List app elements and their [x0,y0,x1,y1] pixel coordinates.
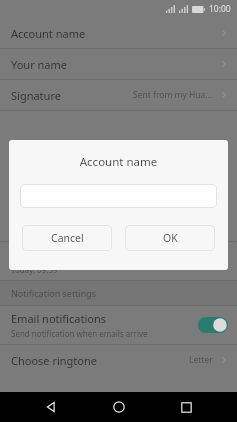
button[interactable]: Recent apps [169,392,203,422]
staticText: Account name [11,26,86,41]
staticText: Signature [11,88,61,103]
button[interactable]: Email notifications [0,306,237,344]
staticText: Account name [9,154,228,170]
staticText: Choose ringtone [11,353,97,368]
staticText: Cancel [51,231,84,245]
button[interactable]: Account name [0,18,237,48]
staticText: 10:00 [209,3,231,15]
staticText: Send notification when emails arrive [11,328,148,339]
staticText: Today, 09:59 [11,264,58,275]
staticText: Your name [11,57,67,72]
button[interactable]: Back [34,392,68,422]
staticText: Sync Email [11,247,66,262]
button[interactable]: Sync Email [0,242,237,280]
button[interactable]: Account name input field [20,184,217,208]
button[interactable]: Cancel [22,225,112,251]
button[interactable]: Signature [0,80,237,110]
button[interactable]: Home [102,392,136,422]
button[interactable]: Choose ringtone [0,345,237,375]
staticText: Letter [189,354,213,366]
staticText: Email notifications [11,311,106,326]
button[interactable]: OK [125,225,215,251]
staticText: Notification settings [11,287,97,299]
button[interactable]: Your name [0,49,237,79]
staticText: Sent from my Hua... [133,89,213,101]
button[interactable]: Toggle on [198,317,228,333]
staticText: OK [163,231,178,245]
